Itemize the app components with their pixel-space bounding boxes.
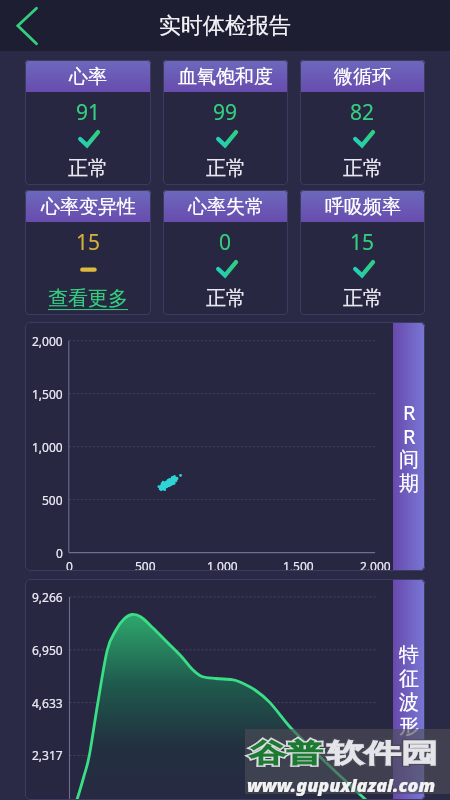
staticText: 1,500 [283,558,314,571]
staticText: 正常 [343,286,383,311]
staticText: 2,000 [32,333,63,349]
staticText: 查看更多 [48,286,128,311]
staticText: 形 [399,714,419,738]
staticText: 征 [399,666,419,690]
staticText: 0 [219,228,232,257]
staticText: R [403,423,416,447]
staticText: 软件园 [327,737,438,770]
staticText: 间 [399,447,419,471]
button[interactable]: 呼吸频率 [300,190,425,315]
staticText: 正常 [206,286,246,311]
button[interactable]: 微循环 [300,60,425,185]
button[interactable]: 血氧饱和度 [163,60,288,185]
staticText: 期 [399,471,419,495]
staticText: www.gupuxlazal.com [247,773,436,798]
staticText: 6,950 [32,642,63,658]
staticText: 心率变异性 [41,195,136,219]
staticText: 1,000 [32,439,63,455]
button[interactable]: Back [0,0,52,51]
staticText: 软件园 [327,737,438,770]
staticText: 正常 [206,156,246,181]
staticText: 1,000 [207,558,238,571]
staticText: 0 [66,558,73,571]
staticText: 9,266 [32,589,63,605]
staticText: 2,000 [360,558,391,571]
staticText: 500 [42,492,63,508]
staticText: 2,317 [32,747,63,763]
staticText: 82 [350,98,375,127]
staticText: 15 [76,228,101,257]
button[interactable]: 心率 [25,60,151,185]
staticText: 呼吸频率 [325,195,401,219]
staticText: 微循环 [334,65,391,89]
staticText: 15 [350,228,375,257]
staticText: 1,500 [32,386,63,402]
staticText: 99 [213,98,238,127]
staticText: 波 [399,690,419,714]
button[interactable]: 心率变异性 [25,190,151,315]
staticText: 血氧饱和度 [178,65,273,89]
staticText: 谷普 [249,737,323,770]
staticText: 4,633 [32,695,63,711]
staticText: 实时体检报告 [159,12,291,40]
staticText: 特 [399,642,419,666]
staticText: 心率 [69,65,107,89]
staticText: 正常 [343,156,383,181]
button[interactable]: 心率失常 [163,190,288,315]
staticText: 91 [76,98,101,127]
staticText: 谷普 [249,737,323,770]
staticText: 正常 [68,156,108,181]
staticText: 500 [135,558,156,571]
staticText: 心率失常 [188,195,264,219]
staticText: 0 [56,545,63,561]
staticText: R [403,399,416,423]
